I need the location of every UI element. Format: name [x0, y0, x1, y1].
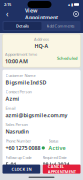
button[interactable]: CLOCK IN [2, 165, 40, 174]
staticText: Add Comments [46, 23, 74, 29]
staticText: ‹ [6, 9, 8, 19]
staticText: CANCEL APPOINTMENT [48, 164, 76, 174]
staticText: ▲ [68, 3, 70, 6]
button[interactable]: CANCEL APPOINTMENT [43, 165, 81, 174]
button[interactable]: Details [3, 22, 41, 30]
staticText: F-01 [5, 161, 16, 168]
staticText: Sales Person [5, 122, 27, 127]
staticText: Stage [42, 171, 51, 176]
staticText: azmi@bigsmile.com.my [5, 112, 67, 119]
staticText: HQ-A [34, 42, 48, 49]
button[interactable]: Add Comments [41, 22, 79, 30]
staticText: Scheduled [57, 55, 78, 61]
staticText: N/A [42, 177, 52, 180]
staticText: Serviced by [5, 171, 25, 176]
staticText: 08 Jul 2024 [42, 161, 69, 168]
staticText: 10:00 AM [5, 58, 28, 65]
staticText: NASRUDIN [5, 177, 33, 180]
staticText: Details [16, 23, 29, 29]
staticText: Appointment Time [5, 51, 37, 57]
staticText: Nasrudin [5, 128, 28, 135]
button[interactable]: Settings [71, 9, 81, 19]
staticText: View Appointment [25, 7, 58, 21]
button[interactable]: Scheduled [57, 55, 78, 61]
staticText: Status [48, 138, 58, 144]
staticText: +60 1275 0088 [5, 144, 40, 151]
staticText: ▮ [71, 2, 73, 7]
staticText: Address [34, 36, 49, 42]
staticText: Azmi [5, 95, 19, 102]
staticText: Phone Number [5, 138, 31, 144]
staticText: CLOCK IN [11, 166, 31, 172]
staticText: 2:15 [4, 2, 11, 7]
staticText: Email [5, 105, 15, 111]
button[interactable]: Back [2, 9, 12, 19]
staticText: Bigsmile Ind SD [5, 79, 46, 86]
staticText: Required Date [42, 155, 66, 160]
staticText: Customer Name [5, 73, 35, 78]
staticText: Follow up Code [5, 155, 31, 160]
staticText: Contact Person [5, 89, 31, 94]
staticText: Active [48, 144, 65, 151]
